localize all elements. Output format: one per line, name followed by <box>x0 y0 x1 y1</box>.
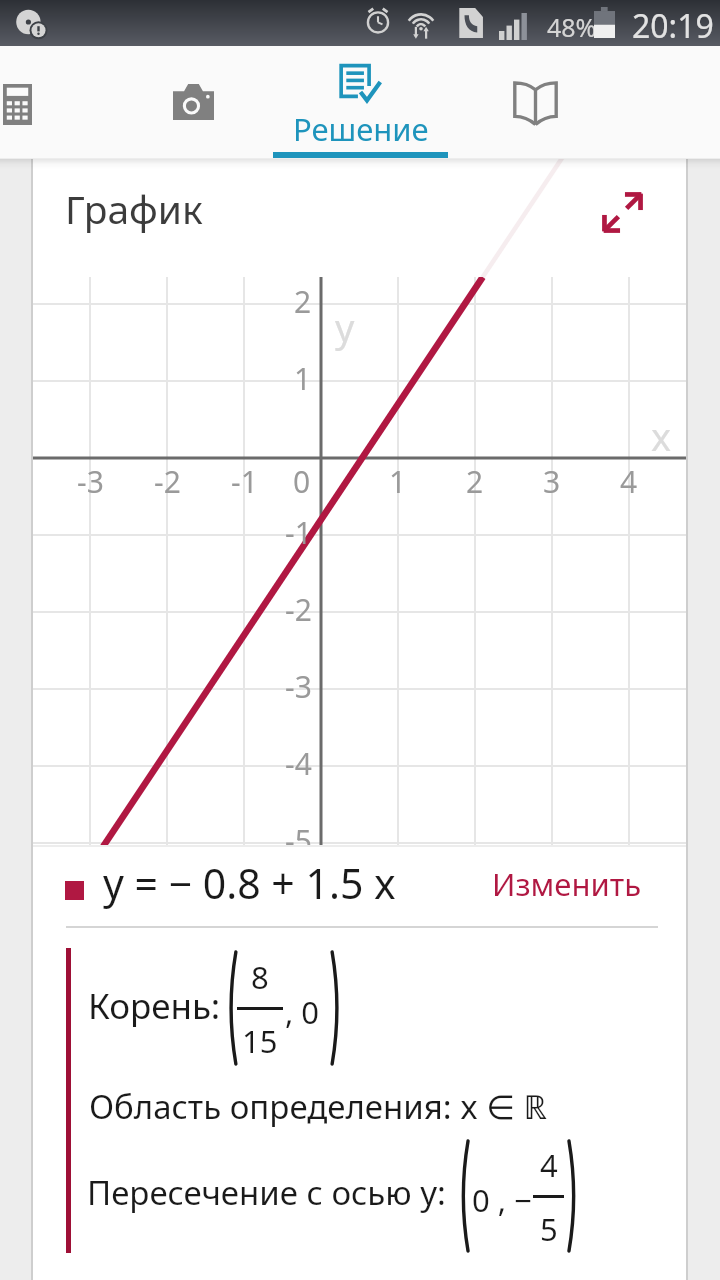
button[interactable]: Solution <box>273 46 448 158</box>
staticText: График <box>65 182 203 235</box>
staticText: 2 <box>294 281 312 322</box>
staticText: , 0 <box>285 991 320 1033</box>
staticText: 4 <box>540 1144 558 1186</box>
staticText: 48% <box>547 10 597 44</box>
staticText: -4 <box>285 743 312 784</box>
staticText: y = − 0.8 + 1.5 x <box>103 855 396 911</box>
staticText: 1 <box>294 358 312 399</box>
staticText: Решение <box>293 108 429 150</box>
staticText: 0 , − <box>472 1179 532 1221</box>
button[interactable]: Glossary tab <box>448 46 623 158</box>
other: Solution <box>339 63 382 107</box>
staticText: 1 <box>389 461 407 502</box>
staticText: y <box>335 301 355 353</box>
staticText: -5 <box>285 820 312 845</box>
staticText: 2 <box>466 461 484 502</box>
other: Camera <box>173 83 214 120</box>
staticText: 3 <box>543 461 561 502</box>
staticText: -1 <box>231 461 258 502</box>
button[interactable]: Expand graph <box>580 170 664 254</box>
staticText: Изменить <box>492 863 642 905</box>
staticText: 0 <box>293 461 311 502</box>
button[interactable]: Camera tab <box>106 46 281 158</box>
staticText: 15 <box>242 1020 278 1062</box>
button[interactable]: y = − 0.8 + 1.5 x <box>33 847 686 933</box>
button[interactable]: Calculator tab <box>0 46 105 158</box>
staticText: -2 <box>154 461 181 502</box>
staticText: x <box>651 410 672 462</box>
staticText: 20:19 <box>632 4 714 48</box>
staticText: 4 <box>620 461 638 502</box>
other: Book <box>513 82 558 125</box>
staticText: 8 <box>251 956 269 998</box>
staticText: Пересечение с осью y: <box>87 1170 446 1215</box>
staticText: -1 <box>285 512 312 553</box>
staticText: -3 <box>77 461 104 502</box>
staticText: Область определения: x ∈ ℝ <box>89 1084 548 1129</box>
staticText: -3 <box>285 666 312 707</box>
staticText: -2 <box>285 589 312 630</box>
other: Storage warning <box>6 0 50 44</box>
staticText: Корень: <box>88 982 221 1030</box>
other: Calculator <box>3 84 32 125</box>
staticText: 5 <box>540 1208 558 1250</box>
